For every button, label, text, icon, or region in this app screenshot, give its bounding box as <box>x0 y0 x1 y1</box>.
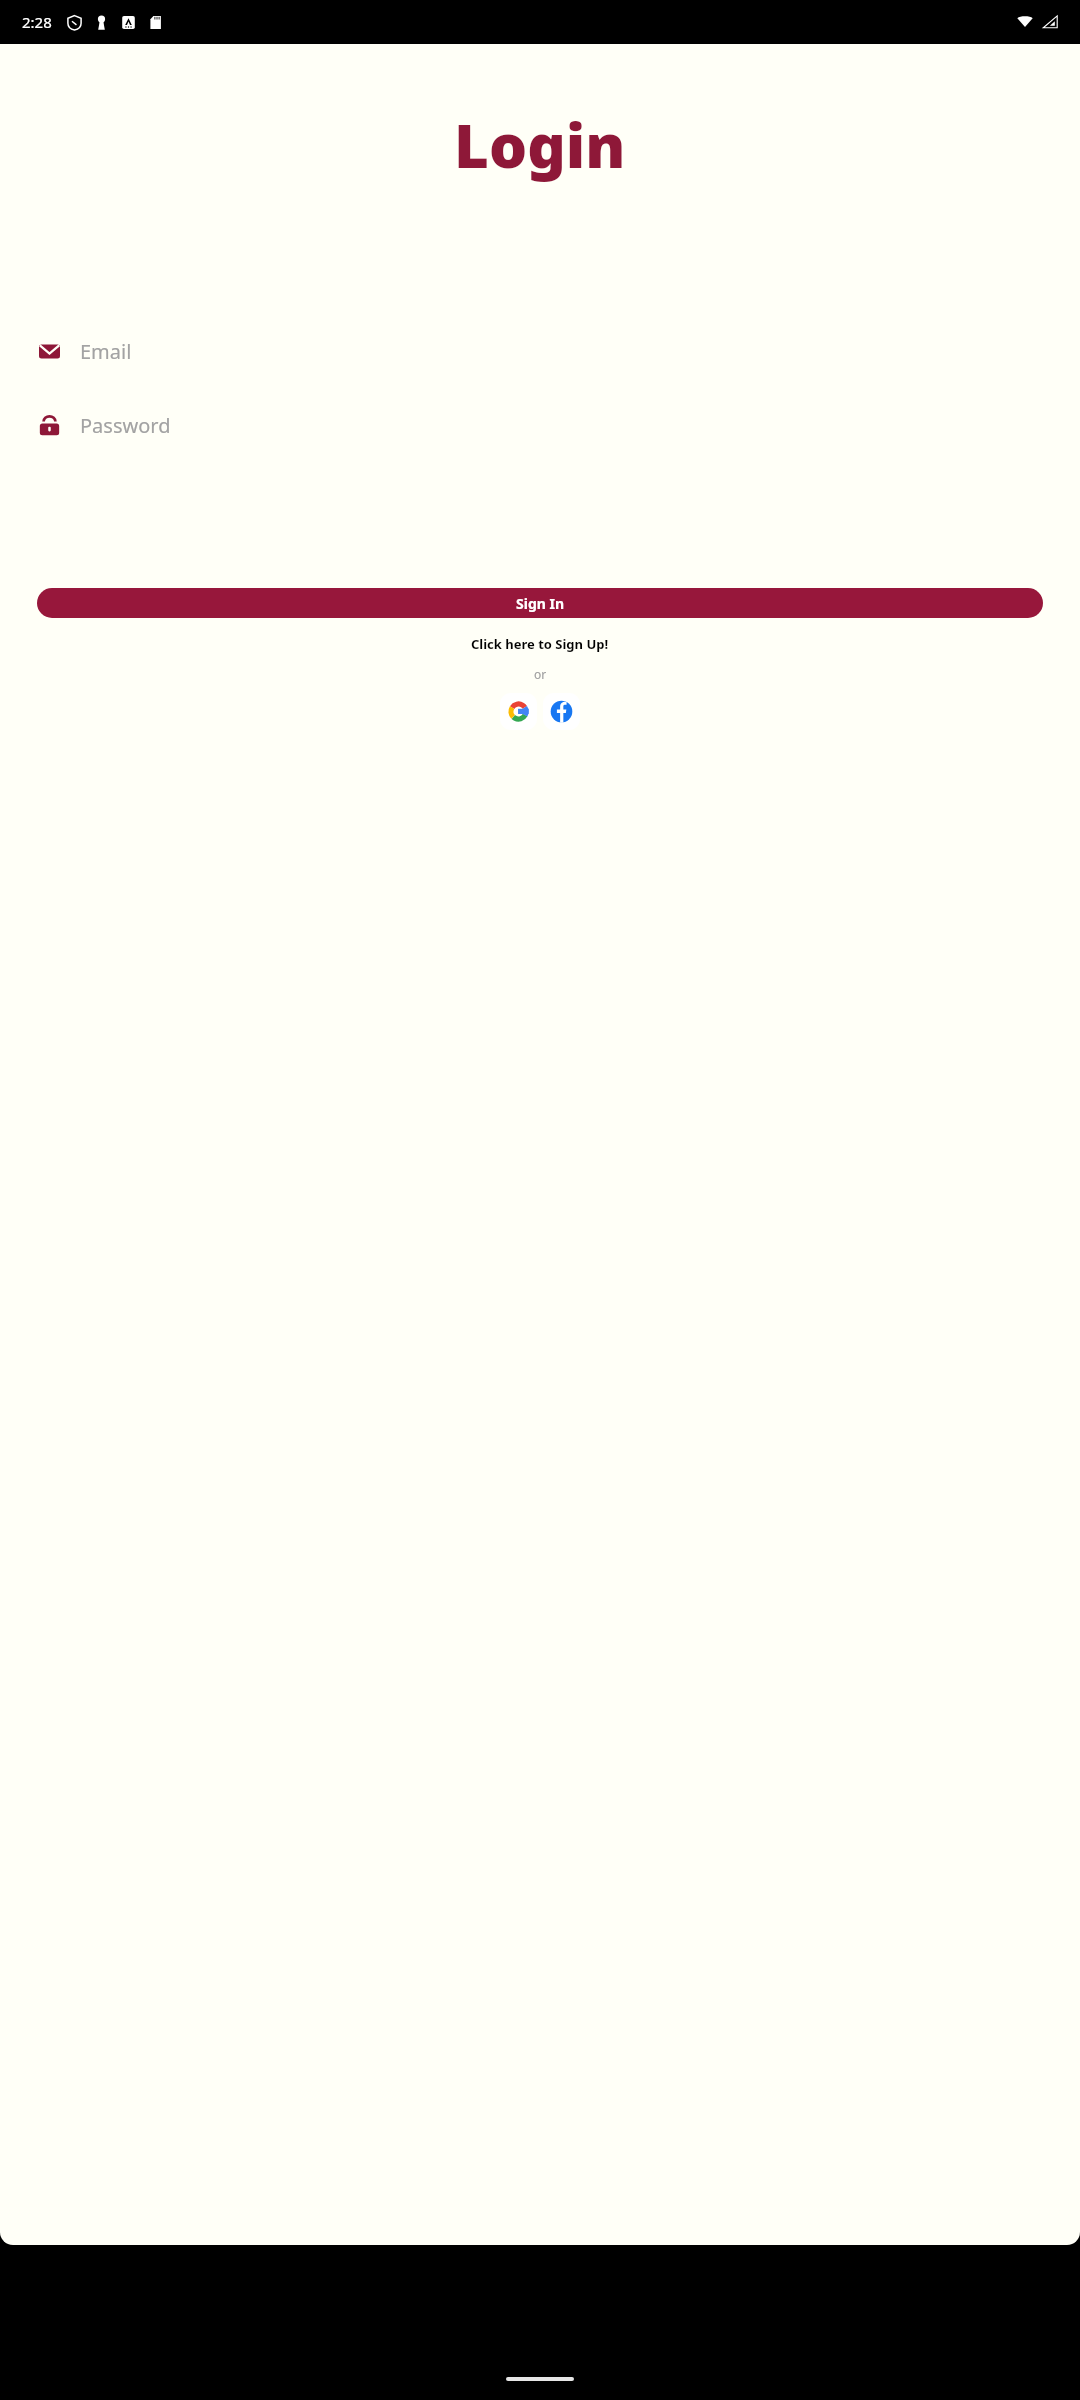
staticText: 2:28 <box>22 12 52 32</box>
button[interactable]: Click here to Sign Up! <box>459 631 621 657</box>
staticText: Password <box>80 412 171 439</box>
staticText: Email <box>80 338 132 365</box>
staticText: Click here to Sign Up! <box>471 635 609 653</box>
button[interactable]: Email <box>38 334 1042 368</box>
staticText: Login <box>454 104 626 186</box>
button[interactable]: Sign in with Google <box>500 693 537 730</box>
button[interactable]: Password <box>38 408 1042 442</box>
staticText: Sign In <box>516 594 565 613</box>
staticText: or <box>534 666 547 682</box>
button[interactable]: Sign in with Facebook <box>543 693 580 730</box>
button[interactable]: Sign In <box>37 588 1043 618</box>
